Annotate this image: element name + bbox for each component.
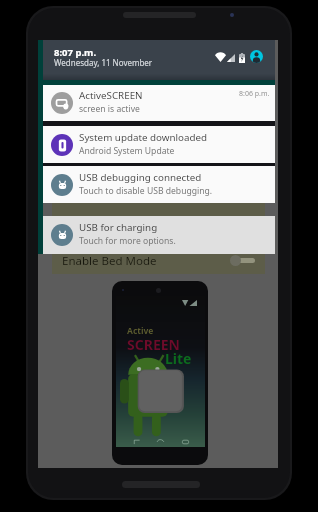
button[interactable]: ActiveSCREEN [43, 85, 275, 121]
staticText: System update downloaded [79, 131, 208, 144]
staticText: Lite [165, 349, 192, 368]
button[interactable]: USB for charging [43, 216, 275, 254]
staticText: Enable Bed Mode [62, 253, 157, 269]
staticText: screen is active [79, 103, 140, 115]
staticText: Touch for more options. [79, 235, 176, 247]
staticText: USB for charging [79, 221, 158, 234]
button[interactable]: USB debugging connected [43, 166, 275, 203]
staticText: SCREEN [127, 335, 180, 354]
staticText: Android System Update [79, 145, 175, 157]
button[interactable]: User profile [250, 50, 263, 63]
staticText: 8:06 p.m. [239, 89, 270, 99]
button[interactable]: System update downloaded [43, 126, 275, 163]
staticText: USB debugging connected [79, 171, 202, 184]
staticText: Wednesday, 11 November [54, 57, 153, 68]
staticText: Active [127, 325, 154, 337]
staticText: ActiveSCREEN [79, 89, 143, 102]
staticText: Touch to disable USB debugging. [79, 185, 213, 197]
staticText: 8:07 p.m. [54, 46, 97, 59]
